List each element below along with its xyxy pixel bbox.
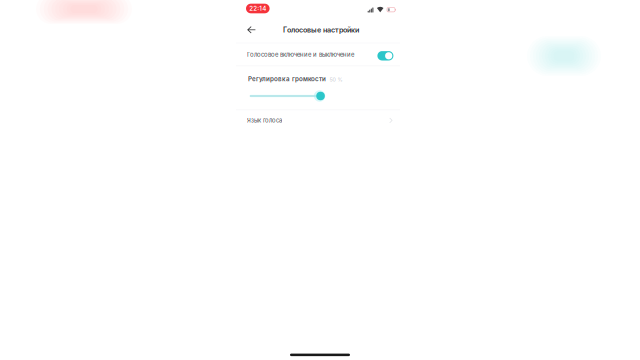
button[interactable]: Back [241,20,261,40]
button[interactable]: Язык голоса [236,110,400,132]
staticText: Язык голоса [247,117,282,124]
staticText: 50 % [329,76,342,83]
button[interactable]: Голосовое включение и выключение [236,44,400,65]
staticText: Голосовое включение и выключение [247,51,354,58]
staticText: Голосовые настройки [283,25,359,34]
staticText: 22:14 [249,5,266,12]
staticText: Регулировка громкости [248,75,326,83]
